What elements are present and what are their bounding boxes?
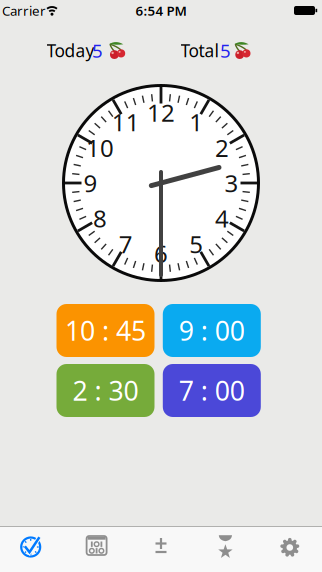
staticText: 1 — [189, 106, 203, 138]
button[interactable]: Awards — [193, 526, 257, 572]
staticText: 9 — [83, 167, 97, 199]
staticText: 2 : 30 — [72, 373, 138, 408]
staticText: 3 — [224, 167, 238, 199]
staticText: Total — [180, 39, 218, 62]
staticText: 7 : 00 — [179, 373, 245, 408]
button[interactable]: 7 : 00 — [163, 364, 261, 417]
staticText: 8 — [93, 202, 107, 234]
staticText: 7 — [119, 228, 133, 260]
button[interactable]: Digital quiz — [65, 526, 129, 572]
staticText: 10 — [86, 132, 114, 164]
staticText: 9 : 00 — [179, 313, 245, 348]
staticText: 5 — [189, 228, 203, 260]
staticText: 10 : 45 — [65, 313, 146, 348]
button[interactable]: 10 : 45 — [56, 304, 154, 357]
staticText: 4 — [215, 202, 229, 234]
staticText: 6:54 PM — [135, 2, 186, 19]
staticText: 5 — [220, 38, 231, 63]
button[interactable]: Settings — [258, 526, 322, 572]
staticText: 5 — [92, 38, 103, 63]
button[interactable]: 9 : 00 — [163, 304, 261, 357]
button[interactable]: 2 : 30 — [56, 364, 154, 417]
staticText: Today — [46, 39, 94, 62]
button[interactable]: Practice — [129, 526, 193, 572]
staticText: 11 — [112, 106, 140, 138]
staticText: 12 — [147, 97, 175, 128]
button[interactable]: Quiz — [0, 526, 64, 572]
staticText: 2 — [215, 132, 229, 164]
staticText: Carrier — [2, 2, 46, 19]
staticText: 6 — [154, 238, 168, 269]
